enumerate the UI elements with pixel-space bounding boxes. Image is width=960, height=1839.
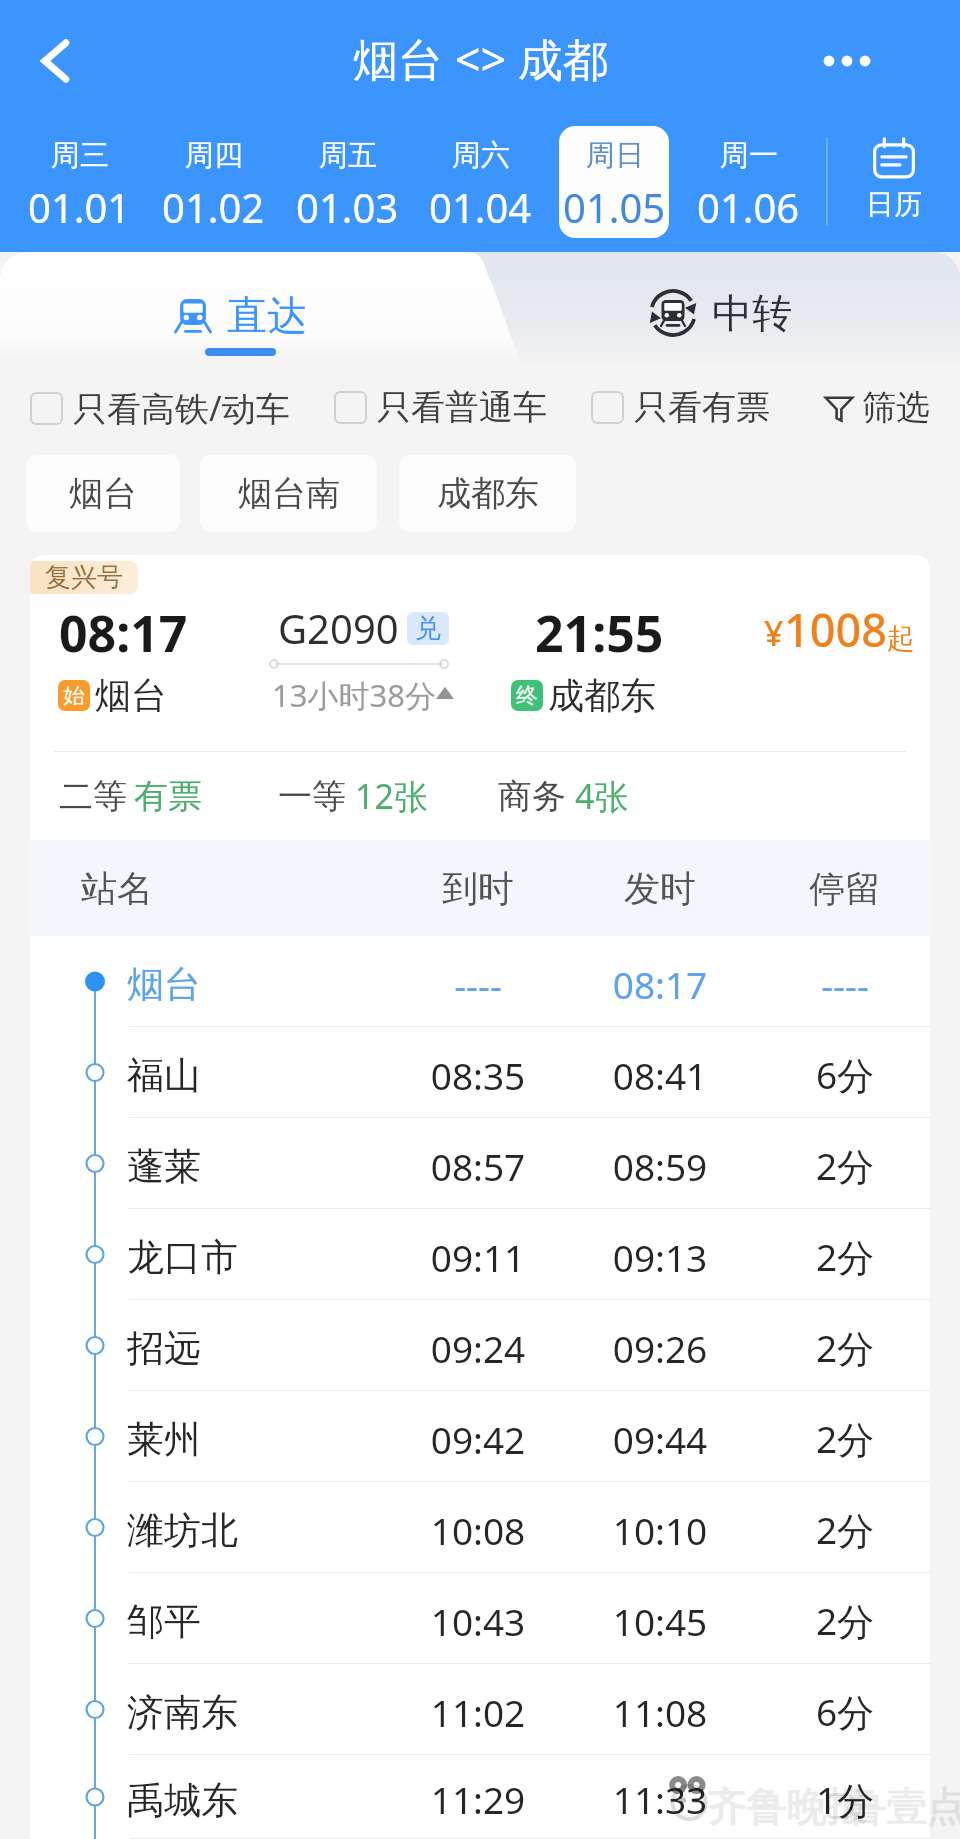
button[interactable]: Back	[20, 26, 90, 96]
staticText: 08:17	[590, 959, 730, 1009]
staticText: 发时	[590, 866, 730, 911]
staticText: 只看普通车	[377, 386, 547, 429]
staticText: 中转	[712, 288, 792, 338]
staticText: 2分	[775, 1504, 915, 1555]
staticText: 08:57	[408, 1141, 548, 1191]
staticText: 邹平	[127, 1598, 201, 1645]
staticText: 齐鲁晚报	[706, 1782, 866, 1832]
staticText: 11:08	[590, 1687, 730, 1737]
button[interactable]: 禹城东	[30, 1755, 930, 1839]
staticText: ----	[775, 959, 915, 1009]
staticText: 6分	[775, 1686, 915, 1737]
button[interactable]: 只看有票	[591, 380, 770, 435]
button[interactable]: 烟台	[30, 936, 930, 1027]
staticText: 龙口市	[127, 1234, 238, 1281]
button[interactable]: 福山	[30, 1027, 930, 1118]
staticText: 09:44	[590, 1414, 730, 1464]
button[interactable]: 烟台	[26, 455, 180, 532]
staticText: 2分	[775, 1140, 915, 1191]
staticText: 01.04	[429, 180, 532, 234]
staticText: 10:10	[590, 1505, 730, 1555]
staticText: 潍坊北	[127, 1507, 238, 1554]
staticText: 1008	[784, 599, 887, 660]
button[interactable]: 招远	[30, 1300, 930, 1391]
staticText: 2分	[775, 1413, 915, 1464]
staticText: 11:29	[408, 1774, 548, 1824]
staticText: 08:17	[59, 599, 188, 667]
button[interactable]: 成都东	[399, 455, 576, 532]
staticText: 09:11	[408, 1232, 548, 1282]
staticText: 到时	[408, 866, 548, 911]
button[interactable]: 济南东	[30, 1664, 930, 1755]
button[interactable]: 只看普通车	[334, 380, 547, 435]
staticText: 08:59	[590, 1141, 730, 1191]
button[interactable]: 周一	[693, 126, 803, 238]
staticText: 周五	[319, 137, 377, 174]
button[interactable]: 邹平	[30, 1573, 930, 1664]
button[interactable]: 筛选	[820, 382, 934, 433]
staticText: 只看有票	[634, 386, 770, 429]
staticText: 起	[887, 621, 915, 656]
staticText: 成都东	[437, 472, 539, 515]
staticText: 烟台	[95, 673, 167, 718]
staticText: 烟台	[127, 961, 201, 1008]
staticText: 二等	[59, 775, 127, 818]
staticText: 11:33	[590, 1774, 730, 1824]
staticText: 始	[63, 682, 85, 710]
staticText: 福山	[127, 1052, 201, 1099]
staticText: 10:43	[408, 1596, 548, 1646]
button[interactable]: 烟台南	[200, 455, 377, 532]
staticText: 09:13	[590, 1232, 730, 1282]
staticText: 周日	[586, 137, 644, 174]
button[interactable]: Calendar	[828, 110, 960, 250]
button[interactable]: 周六	[425, 126, 535, 238]
staticText: 01.02	[162, 180, 265, 234]
staticText: 周六	[452, 137, 510, 174]
staticText: 烟台	[69, 472, 137, 515]
staticText: 直达	[227, 290, 307, 340]
staticText: G2090	[278, 601, 399, 655]
staticText: 01.05	[563, 180, 666, 234]
staticText: 01.06	[697, 180, 800, 234]
staticText: 鲁壹点	[846, 1782, 960, 1832]
staticText: 2分	[775, 1231, 915, 1282]
staticText: 21:55	[535, 599, 664, 667]
staticText: 1分	[775, 1774, 915, 1825]
staticText: 商务	[498, 775, 566, 818]
staticText: 周四	[185, 137, 243, 174]
staticText: 08:41	[590, 1050, 730, 1100]
button[interactable]: 莱州	[30, 1391, 930, 1482]
button[interactable]: 中转	[480, 252, 960, 365]
staticText: 日历	[866, 187, 922, 222]
staticText: 济南东	[127, 1689, 238, 1736]
staticText: 2分	[775, 1595, 915, 1646]
button[interactable]: 直达	[0, 252, 480, 365]
staticText: 莱州	[127, 1416, 201, 1463]
staticText: 6分	[775, 1049, 915, 1100]
staticText: 禹城东	[127, 1777, 238, 1824]
button[interactable]: 周五	[292, 126, 402, 238]
button[interactable]: 蓬莱	[30, 1118, 930, 1209]
staticText: 招远	[127, 1325, 201, 1372]
staticText: 09:42	[408, 1414, 548, 1464]
button[interactable]: 周四	[158, 126, 268, 238]
button[interactable]: 只看高铁/动车	[30, 379, 290, 437]
staticText: 有票	[134, 775, 202, 818]
staticText: ----	[408, 959, 548, 1009]
staticText: 烟台南	[238, 472, 340, 515]
staticText: 复兴号	[45, 561, 123, 594]
button[interactable]: 周三	[24, 126, 134, 238]
staticText: ¥	[764, 610, 784, 656]
staticText: 成都东	[548, 673, 656, 718]
button[interactable]: 周日	[559, 126, 669, 238]
staticText: 终	[516, 682, 538, 710]
staticText: 10:08	[408, 1505, 548, 1555]
staticText: 一等	[278, 775, 346, 818]
staticText: 08:35	[408, 1050, 548, 1100]
button[interactable]: 龙口市	[30, 1209, 930, 1300]
staticText: 10:45	[590, 1596, 730, 1646]
button[interactable]: More options	[825, 41, 869, 81]
button[interactable]: 潍坊北	[30, 1482, 930, 1573]
staticText: 筛选	[862, 386, 930, 429]
staticText: 13小时38分	[272, 674, 436, 716]
